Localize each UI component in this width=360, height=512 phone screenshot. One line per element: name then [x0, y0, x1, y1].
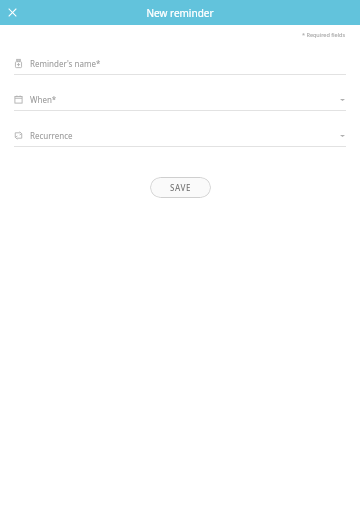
button[interactable]: Reminder's name*	[0, 52, 360, 88]
staticText: SAVE	[170, 182, 192, 193]
button[interactable]: When*	[0, 88, 360, 124]
staticText: Reminder's name*	[30, 58, 101, 69]
button[interactable]: Close	[0, 0, 25, 25]
button[interactable]: SAVE	[150, 177, 211, 198]
staticText: When*	[30, 94, 57, 105]
staticText: Recurrence	[30, 130, 73, 141]
staticText: * Required fields	[302, 31, 346, 38]
button[interactable]: Recurrence	[0, 124, 360, 160]
staticText: New reminder	[146, 6, 214, 20]
